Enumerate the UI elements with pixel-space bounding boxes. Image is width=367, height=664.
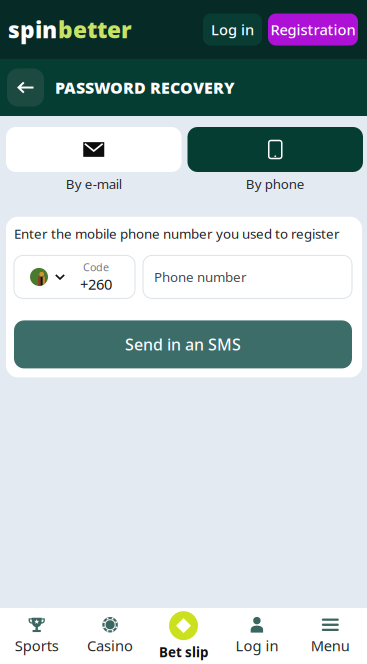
staticText: Send in an SMS: [125, 334, 241, 355]
staticText: +260: [80, 274, 112, 294]
staticText: Menu: [311, 636, 350, 655]
button[interactable]: Menu: [294, 608, 367, 664]
staticText: Phone number: [154, 268, 247, 286]
staticText: Enter the mobile phone number you used t…: [14, 225, 340, 242]
button[interactable]: Sports: [0, 608, 73, 664]
staticText: Registration: [270, 20, 355, 39]
button[interactable]: Registration: [268, 13, 358, 45]
staticText: Log in: [235, 636, 278, 655]
staticText: spin: [8, 14, 57, 44]
button[interactable]: Log in: [220, 608, 294, 664]
button[interactable]: Bet slip: [147, 608, 220, 664]
button[interactable]: Send in an SMS: [14, 320, 352, 368]
staticText: Casino: [87, 636, 133, 655]
staticText: better: [58, 14, 132, 44]
button[interactable]: Casino: [73, 608, 147, 664]
button[interactable]: Back: [7, 68, 44, 106]
button[interactable]: Code: [14, 255, 135, 298]
button[interactable]: Log in: [203, 13, 262, 45]
button[interactable]: By e-mail: [6, 127, 181, 193]
staticText: PASSWORD RECOVERY: [55, 77, 235, 98]
staticText: By e-mail: [66, 175, 122, 193]
staticText: By phone: [246, 175, 305, 193]
staticText: Log in: [211, 20, 254, 39]
staticText: Code: [83, 260, 109, 274]
staticText: Bet slip: [159, 643, 208, 661]
button[interactable]: By phone: [187, 127, 363, 193]
staticText: Sports: [15, 636, 59, 655]
button[interactable]: Phone number: [143, 255, 352, 298]
